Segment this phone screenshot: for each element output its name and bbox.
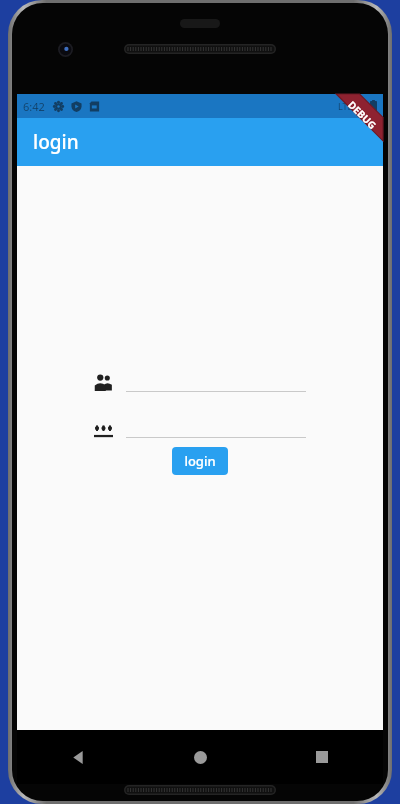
button[interactable]: Home xyxy=(139,730,261,784)
staticText: login xyxy=(33,129,79,155)
staticText: DEBUG xyxy=(345,98,380,132)
button[interactable]: Recent apps xyxy=(261,730,383,784)
staticText: login xyxy=(184,452,216,470)
button[interactable]: login xyxy=(172,447,228,475)
button[interactable] xyxy=(94,412,306,438)
button[interactable]: Back xyxy=(17,730,139,784)
button[interactable] xyxy=(94,366,306,392)
staticText: LTE xyxy=(338,100,353,112)
staticText: 6:42 xyxy=(23,99,45,114)
